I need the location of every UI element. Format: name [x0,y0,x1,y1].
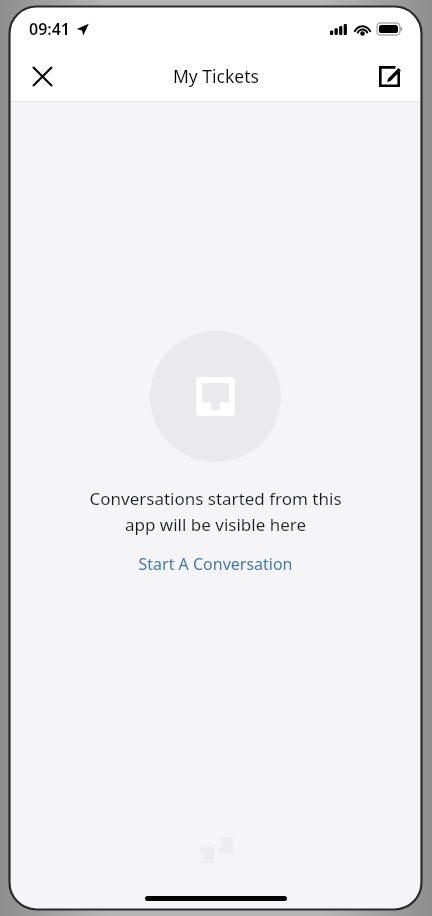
staticText: Conversations started from this app will… [89,487,342,536]
staticText: Start A Conversation [138,553,293,575]
staticText: My Tickets [173,64,259,88]
button[interactable]: Close [18,52,66,100]
staticText: 09:41 [29,18,71,40]
button[interactable]: Start A Conversation [124,546,307,582]
button[interactable]: New conversation [366,53,412,99]
